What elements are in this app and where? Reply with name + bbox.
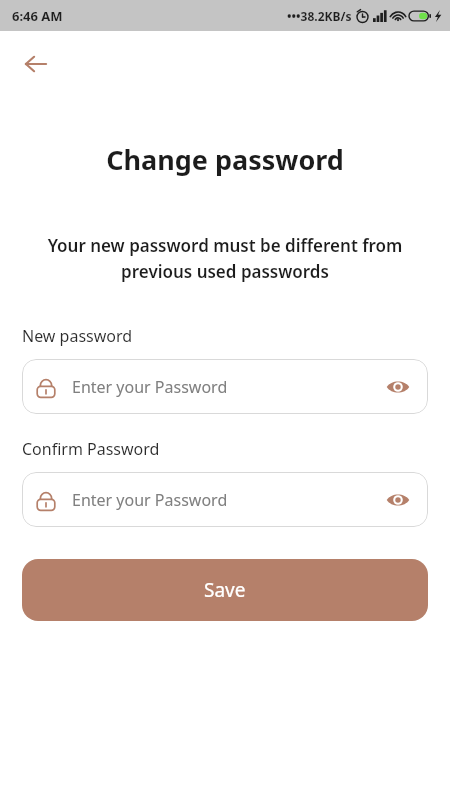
staticText: Confirm Password (22, 438, 160, 460)
button[interactable]: Show password (382, 484, 414, 516)
staticText: Save (204, 577, 246, 603)
button[interactable]: Enter your Password (22, 359, 428, 414)
button[interactable]: Back (14, 42, 58, 86)
staticText: 6:46 AM (12, 7, 63, 25)
staticText: New password (22, 325, 133, 347)
button[interactable]: Save (22, 559, 428, 621)
button[interactable]: Enter your Password (22, 472, 428, 527)
staticText: •••38.2KB/s (287, 8, 352, 24)
staticText: Enter your Password (72, 376, 382, 398)
staticText: Change password (0, 141, 450, 178)
staticText: Enter your Password (72, 489, 382, 511)
button[interactable]: Show password (382, 371, 414, 403)
staticText: Your new password must be different from… (18, 234, 432, 283)
